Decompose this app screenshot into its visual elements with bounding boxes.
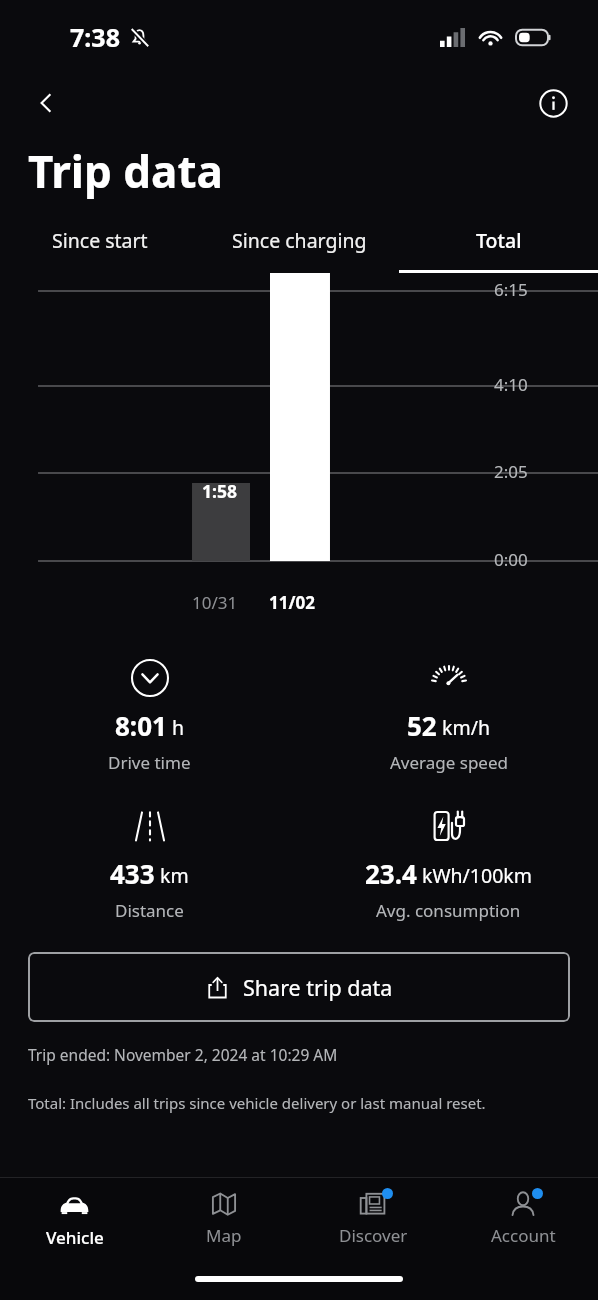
- button[interactable]: 52: [299, 658, 598, 774]
- staticText: Discover: [339, 1224, 408, 1247]
- staticText: Total: [476, 227, 522, 254]
- staticText: Vehicle: [46, 1226, 104, 1249]
- button[interactable]: Back: [20, 77, 72, 129]
- staticText: 7:38: [70, 20, 120, 54]
- staticText: km: [160, 862, 189, 889]
- staticText: Since charging: [232, 227, 367, 254]
- button[interactable]: Vehicle: [0, 1188, 149, 1249]
- button[interactable]: Info: [530, 80, 576, 126]
- staticText: 11/02: [269, 591, 315, 614]
- staticText: 2:05: [494, 460, 528, 483]
- staticText: 10/31: [192, 591, 238, 614]
- button[interactable]: Share trip data: [28, 952, 570, 1022]
- button[interactable]: Discover: [298, 1189, 448, 1247]
- staticText: Since start: [52, 227, 148, 254]
- staticText: Distance: [115, 899, 184, 922]
- staticText: Share trip data: [243, 973, 393, 1002]
- staticText: Trip data: [28, 141, 223, 201]
- staticText: 0:00: [494, 548, 528, 571]
- button[interactable]: Since start: [0, 210, 200, 270]
- button[interactable]: 433: [0, 806, 299, 922]
- staticText: Map: [206, 1224, 242, 1247]
- staticText: 6:15: [494, 278, 528, 301]
- staticText: Avg. consumption: [376, 899, 521, 922]
- staticText: km/h: [442, 714, 490, 741]
- button[interactable]: 23.4: [299, 806, 598, 922]
- staticText: kWh/100km: [422, 862, 532, 889]
- button[interactable]: Since charging: [200, 210, 399, 270]
- staticText: 52: [407, 708, 437, 743]
- button[interactable]: Map: [149, 1189, 298, 1247]
- staticText: 1:58: [202, 479, 237, 503]
- button[interactable]: 8:01: [0, 658, 299, 774]
- staticText: 23.4: [365, 856, 417, 891]
- button[interactable]: Account: [448, 1189, 598, 1247]
- staticText: 4:10: [494, 373, 528, 396]
- staticText: Average speed: [390, 751, 508, 774]
- staticText: Drive time: [108, 751, 191, 774]
- staticText: 8:01: [115, 708, 167, 743]
- staticText: 433: [110, 856, 155, 891]
- staticText: Total: Includes all trips since vehicle …: [28, 1093, 486, 1113]
- button[interactable]: Total: [399, 210, 598, 270]
- staticText: Account: [491, 1224, 556, 1247]
- staticText: Trip ended: November 2, 2024 at 10:29 AM: [28, 1044, 338, 1065]
- staticText: h: [172, 714, 185, 741]
